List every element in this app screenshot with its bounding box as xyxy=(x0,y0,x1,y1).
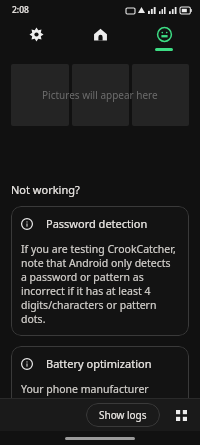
staticText: Pictures will appear here xyxy=(42,88,158,102)
staticText: Battery optimization xyxy=(46,356,152,371)
button[interactable]: Battery optimization xyxy=(11,346,189,445)
button[interactable]: Show logs xyxy=(86,403,160,427)
button[interactable]: Face detection xyxy=(144,20,184,57)
staticText: Password detection xyxy=(46,216,148,231)
staticText: 2:08 xyxy=(12,4,29,16)
staticText: Your phone manufacturer might have impos… xyxy=(21,382,179,435)
staticText: If you are testing CrookCatcher, note th… xyxy=(21,242,179,326)
button[interactable]: Settings xyxy=(16,20,56,57)
staticText: Show logs xyxy=(99,408,147,422)
staticText: Not working? xyxy=(11,182,80,197)
button[interactable]: Home xyxy=(80,20,120,57)
button[interactable]: Password detection xyxy=(11,206,189,336)
button[interactable]: More options xyxy=(170,404,192,426)
